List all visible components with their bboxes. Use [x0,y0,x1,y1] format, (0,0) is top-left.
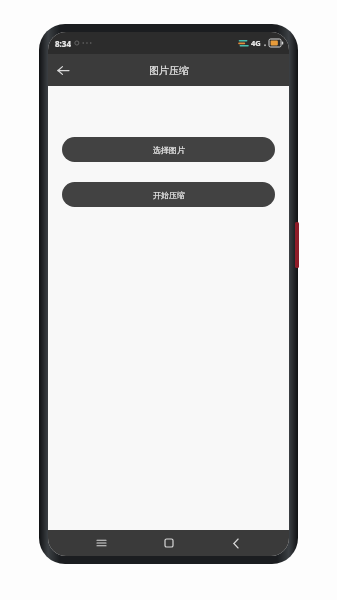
staticText: 8:34 [55,38,71,49]
button[interactable]: 开始压缩 [62,182,275,207]
button[interactable]: Back [48,55,78,85]
staticText: 图片压缩 [149,64,189,77]
staticText: 开始压缩 [153,190,185,200]
button[interactable]: 选择图片 [62,137,275,162]
staticText: 选择图片 [153,145,185,155]
staticText: 4G [251,38,261,48]
button[interactable]: Back [221,531,251,555]
button[interactable]: Home [154,531,184,555]
button[interactable]: Recent apps [86,531,116,555]
